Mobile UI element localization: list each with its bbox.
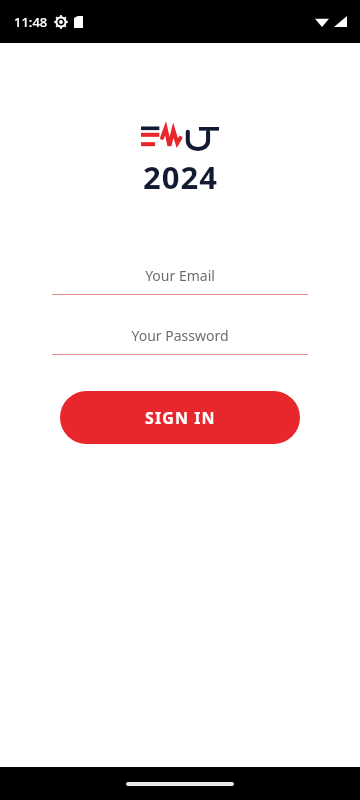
staticText: Your Password xyxy=(131,326,229,345)
button[interactable]: Your Password xyxy=(52,320,308,355)
staticText: 11:48 xyxy=(14,13,48,31)
staticText: SIGN IN xyxy=(145,407,216,429)
staticText: 2024 xyxy=(143,156,218,198)
button[interactable]: SIGN IN xyxy=(60,391,300,444)
staticText: Your Email xyxy=(145,266,215,285)
button[interactable]: Your Email xyxy=(52,260,308,295)
